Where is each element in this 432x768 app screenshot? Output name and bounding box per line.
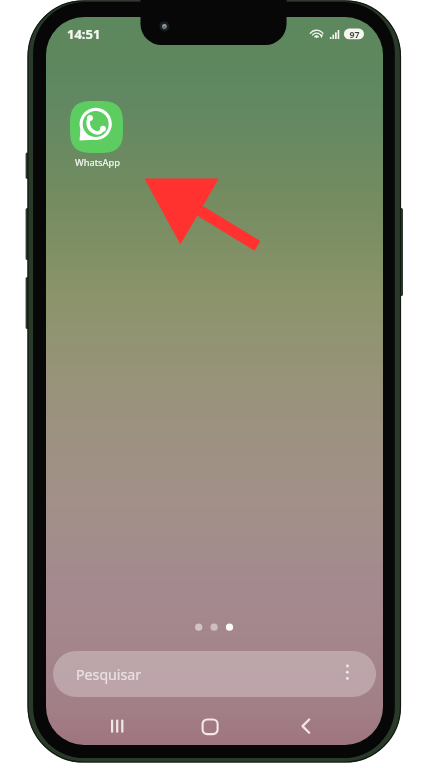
button[interactable]: WhatsApp	[68, 101, 125, 184]
staticText: 14:51	[67, 25, 101, 43]
button[interactable]: More options	[336, 660, 358, 686]
button[interactable]: Pesquisar	[53, 651, 376, 697]
button[interactable]: Home	[194, 713, 226, 741]
staticText: 97	[349, 29, 360, 40]
button[interactable]: Recents	[102, 713, 134, 741]
button[interactable]: Back	[291, 713, 323, 741]
staticText: WhatsApp	[75, 156, 120, 169]
staticText: Pesquisar	[76, 665, 142, 684]
